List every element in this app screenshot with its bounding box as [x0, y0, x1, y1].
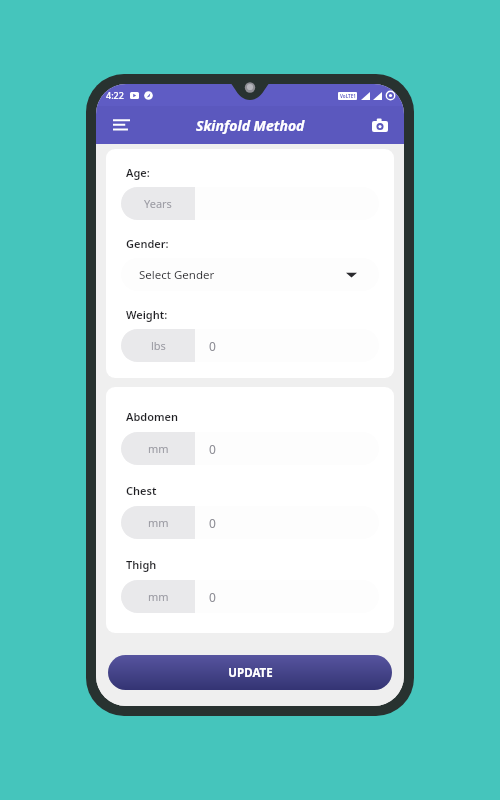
staticText: Thigh: [126, 557, 157, 572]
staticText: Age:: [126, 165, 150, 180]
staticText: 0: [209, 589, 216, 605]
button[interactable]: mm: [121, 506, 379, 539]
button[interactable]: Camera: [366, 111, 394, 139]
staticText: Skinfold Method: [196, 116, 305, 135]
button[interactable]: UPDATE: [108, 655, 392, 690]
staticText: Gender:: [126, 236, 169, 251]
staticText: Chest: [126, 483, 157, 498]
staticText: 4:22: [106, 89, 124, 101]
staticText: mm: [148, 589, 169, 604]
staticText: Years: [144, 196, 172, 211]
staticText: Abdomen: [126, 409, 178, 424]
button[interactable]: Select Gender: [121, 258, 379, 291]
button[interactable]: Years: [121, 187, 379, 220]
staticText: Weight:: [126, 307, 168, 322]
staticText: UPDATE: [228, 665, 273, 681]
staticText: VoLTE1: [340, 93, 356, 99]
button[interactable]: lbs: [121, 329, 379, 362]
staticText: 0: [209, 515, 216, 531]
staticText: mm: [148, 515, 169, 530]
staticText: 0: [209, 338, 216, 354]
staticText: mm: [148, 441, 169, 456]
staticText: lbs: [151, 338, 166, 353]
staticText: Select Gender: [139, 267, 346, 283]
button[interactable]: mm: [121, 432, 379, 465]
staticText: 0: [209, 441, 216, 457]
button[interactable]: mm: [121, 580, 379, 613]
button[interactable]: Open navigation menu: [106, 110, 136, 140]
